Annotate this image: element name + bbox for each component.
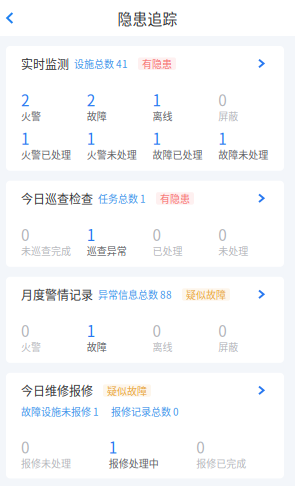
staticText: 火警 [21, 339, 41, 354]
staticText: 未巡查完成 [21, 243, 71, 258]
button[interactable]: 月度警情记录 [6, 277, 284, 303]
staticText: 有隐患 [142, 56, 172, 71]
staticText: 0 [196, 436, 205, 458]
staticText: 1 [152, 127, 161, 149]
staticText: 任务总数 1 [98, 191, 146, 206]
staticText: 巡查异常 [87, 243, 127, 258]
button[interactable]: 今日巡查检查 [6, 181, 284, 207]
staticText: 0 [21, 436, 30, 458]
staticText: 离线 [152, 339, 172, 354]
staticText: 故障设施未报修 1 [21, 404, 99, 419]
staticText: 0 [218, 223, 227, 245]
staticText: 已处理 [152, 243, 182, 258]
staticText: 屏蔽 [218, 109, 238, 123]
staticText: 0 [218, 319, 227, 341]
staticText: 报修处理中 [109, 456, 159, 470]
staticText: 0 [218, 88, 227, 111]
staticText: 未处理 [218, 243, 248, 258]
staticText: 0 [21, 223, 30, 245]
staticText: 0 [152, 223, 161, 245]
staticText: 2 [87, 88, 96, 111]
staticText: 今日维修报修 [21, 382, 93, 399]
staticText: 隐患追踪 [117, 7, 177, 29]
staticText: 屏蔽 [218, 339, 238, 354]
staticText: 离线 [152, 109, 172, 123]
staticText: 火警已处理 [21, 147, 71, 162]
staticText: 异常信息总数 88 [98, 287, 172, 302]
staticText: 有隐患 [160, 191, 190, 206]
staticText: 1 [109, 436, 118, 458]
staticText: 报修记录总数 0 [111, 404, 179, 419]
button[interactable]: 实时监测 [6, 46, 284, 72]
staticText: 故障未处理 [218, 147, 268, 162]
staticText: 1 [87, 319, 96, 341]
button[interactable]: 今日维修报修 [6, 373, 284, 399]
staticText: 2 [21, 88, 30, 111]
staticText: 0 [152, 319, 161, 341]
staticText: 故障 [87, 109, 107, 123]
staticText: 报修未处理 [21, 456, 71, 470]
staticText: 月度警情记录 [21, 286, 93, 303]
staticText: 报修已完成 [196, 456, 246, 470]
staticText: 1 [21, 127, 30, 149]
staticText: 故障已处理 [152, 147, 202, 162]
staticText: 0 [21, 319, 30, 341]
staticText: 1 [87, 127, 96, 149]
staticText: 1 [87, 223, 96, 245]
staticText: 故障 [87, 339, 107, 354]
staticText: 1 [218, 127, 227, 149]
staticText: 1 [152, 88, 161, 111]
staticText: 今日巡查检查 [21, 190, 93, 207]
staticText: 火警 [21, 109, 41, 123]
staticText: 疑似故障 [186, 287, 226, 302]
staticText: 疑似故障 [107, 383, 147, 398]
staticText: 实时监测 [21, 55, 69, 72]
button[interactable]: Back [0, 1, 28, 35]
staticText: 设施总数 41 [74, 56, 128, 71]
staticText: 火警未处理 [87, 147, 137, 162]
